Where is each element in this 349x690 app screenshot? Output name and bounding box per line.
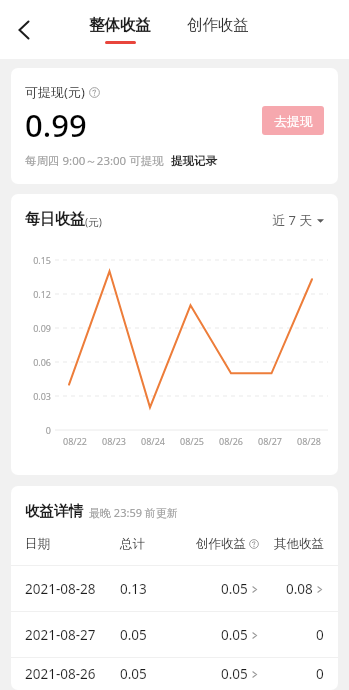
other: Help [249, 539, 259, 549]
staticText: 每周四 9:00～23:00 可提现 [25, 153, 164, 169]
staticText: 近 7 天 [272, 211, 313, 229]
staticText: 0.08 [286, 580, 313, 598]
button[interactable]: 2021-08-28 [11, 566, 338, 611]
staticText: 2021-08-28 [25, 580, 120, 598]
staticText: (元) [85, 215, 102, 229]
staticText: 0.03 [33, 390, 51, 402]
staticText: 2021-08-27 [25, 626, 120, 644]
staticText: 去提现 [274, 113, 313, 129]
staticText: 0.15 [33, 254, 51, 266]
staticText: 整体收益 [89, 15, 151, 35]
staticText: 08/24 [141, 435, 165, 447]
button[interactable]: 创作收益 [183, 15, 253, 35]
staticText: 总计 [120, 536, 179, 552]
staticText: 创作收益 [187, 15, 249, 35]
button[interactable]: Back [4, 10, 44, 50]
staticText: 08/27 [258, 435, 282, 447]
staticText: 0.05 [120, 665, 179, 683]
button[interactable]: 去提现 [262, 106, 324, 135]
staticText: 0.13 [120, 580, 179, 598]
button[interactable]: 2021-08-27 [11, 612, 338, 657]
staticText: 提现记录 [171, 154, 217, 168]
button[interactable]: 近 7 天 [272, 211, 324, 229]
staticText: 0 [45, 424, 51, 436]
staticText: 收益详情 [25, 502, 83, 520]
button[interactable]: 2021-08-26 [11, 658, 338, 690]
staticText: 最晚 23:59 前更新 [89, 505, 178, 520]
staticText: 0.12 [33, 288, 51, 300]
staticText: 日期 [25, 536, 120, 552]
staticText: 08/22 [63, 435, 87, 447]
staticText: 0 [316, 626, 324, 644]
staticText: 08/25 [180, 435, 204, 447]
staticText: 08/26 [219, 435, 243, 447]
staticText: 0.09 [33, 322, 51, 334]
staticText: 可提现(元) [25, 83, 85, 101]
staticText: 0.99 [25, 104, 87, 146]
other: Help [89, 87, 100, 98]
staticText: 0.05 [120, 626, 179, 644]
staticText: 08/28 [297, 435, 321, 447]
button[interactable]: 整体收益 [85, 15, 155, 44]
staticText: 0.06 [33, 356, 51, 368]
staticText: 其他收益 [274, 536, 324, 552]
staticText: 0.05 [221, 626, 248, 644]
button[interactable]: 提现记录 [171, 154, 217, 168]
staticText: 创作收益 [196, 536, 246, 552]
staticText: 0 [316, 665, 324, 683]
staticText: 0.05 [221, 580, 248, 598]
staticText: 0.05 [221, 665, 248, 683]
staticText: 2021-08-26 [25, 665, 120, 683]
staticText: 08/23 [102, 435, 126, 447]
staticText: 每日收益 [25, 210, 85, 229]
